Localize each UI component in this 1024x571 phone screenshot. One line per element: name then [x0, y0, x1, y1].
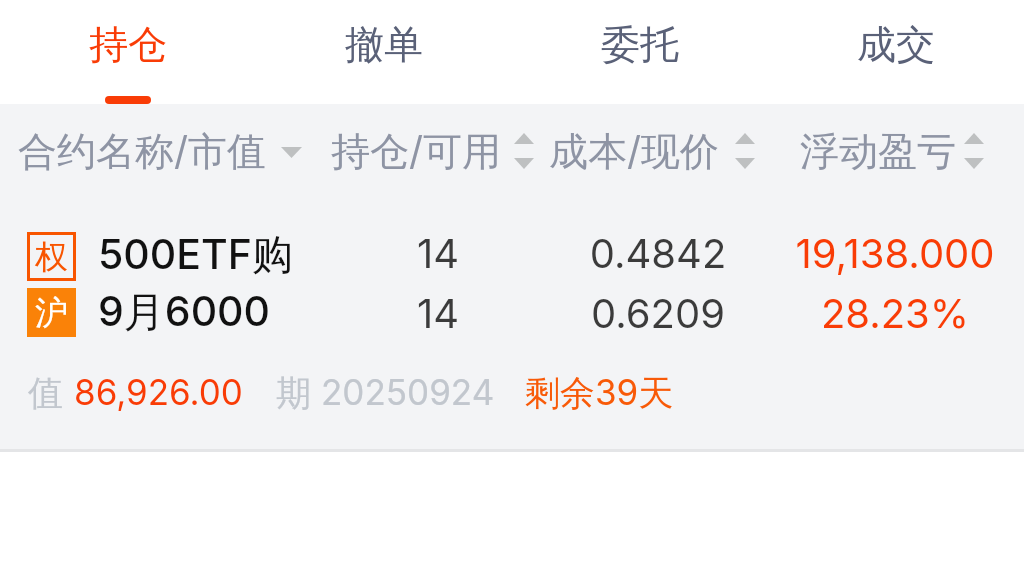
button[interactable]: 成交 — [768, 0, 1024, 104]
staticText: 0.6209 — [558, 289, 758, 337]
staticText: 成交 — [857, 20, 935, 69]
button[interactable]: Sort by 持仓/可用 — [321, 110, 537, 184]
staticText: 500ETF购 — [98, 229, 293, 281]
staticText: 沪 — [35, 292, 68, 334]
staticText: 86,926.00 — [74, 371, 243, 413]
button[interactable]: Sort by 合约名称/市值 — [8, 110, 310, 184]
staticText: 14 — [338, 229, 538, 277]
staticText: 值 — [28, 371, 63, 415]
button[interactable]: 撤单 — [256, 0, 512, 104]
staticText: 9月6000 — [98, 286, 271, 338]
button[interactable]: Sort by 成本/现价 — [539, 110, 758, 184]
staticText: 撤单 — [345, 20, 423, 69]
staticText: 合约名称/市值 — [18, 127, 267, 176]
staticText: 持仓/可用 — [331, 127, 502, 176]
staticText: 14 — [338, 289, 538, 337]
staticText: 0.4842 — [558, 229, 758, 277]
staticText: 20250924 — [321, 371, 495, 413]
staticText: 期 — [276, 371, 311, 415]
button[interactable]: Sort by 浮动盈亏 — [790, 110, 987, 184]
staticText: 浮动盈亏 — [800, 127, 956, 176]
staticText: 委托 — [601, 20, 679, 69]
staticText: 成本/现价 — [549, 127, 720, 176]
staticText: 权 — [35, 236, 68, 278]
staticText: 28.23% — [795, 289, 995, 337]
staticText: 持仓 — [89, 20, 167, 69]
button[interactable]: 权 — [0, 190, 1024, 448]
button[interactable]: 持仓 — [0, 0, 256, 104]
button[interactable]: 委托 — [512, 0, 768, 104]
staticText: 19,138.000 — [795, 229, 995, 277]
staticText: 剩余39天 — [525, 371, 674, 415]
